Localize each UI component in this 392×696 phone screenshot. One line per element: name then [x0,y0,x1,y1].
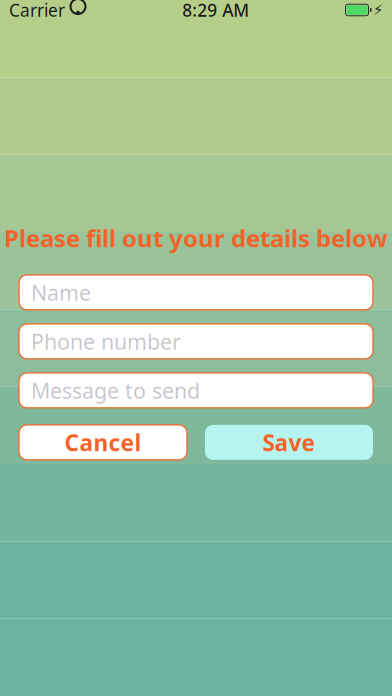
staticText: Please fill out your details below [4,222,388,254]
staticText [65,0,70,21]
staticText: Message to send [31,376,200,404]
staticText: Cancel [64,427,141,457]
button[interactable]: Save [205,425,373,460]
staticText: 8:29 AM [182,0,249,21]
staticText: ⚡︎ [373,2,383,18]
staticText: Carrier [9,0,65,21]
button[interactable]: Cancel [19,425,187,460]
staticText: Phone number [31,327,181,355]
staticText: Save [262,427,315,457]
staticText: Name [31,278,91,306]
